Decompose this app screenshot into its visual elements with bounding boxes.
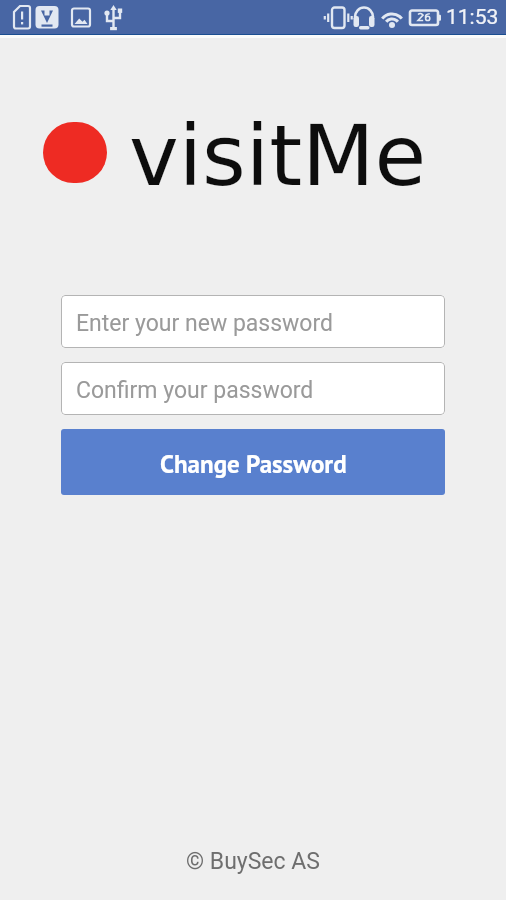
staticText: Enter your new password [76,310,334,337]
staticText: © BuySec AS [0,848,506,875]
staticText: 11:53 [446,5,499,30]
button[interactable]: Confirm your password [61,362,445,415]
staticText: Change Password [160,448,347,480]
button[interactable]: Change Password [61,429,445,495]
staticText: Confirm your password [76,377,314,404]
button[interactable]: Enter your new password [61,295,445,348]
staticText: visitMe [129,107,427,205]
